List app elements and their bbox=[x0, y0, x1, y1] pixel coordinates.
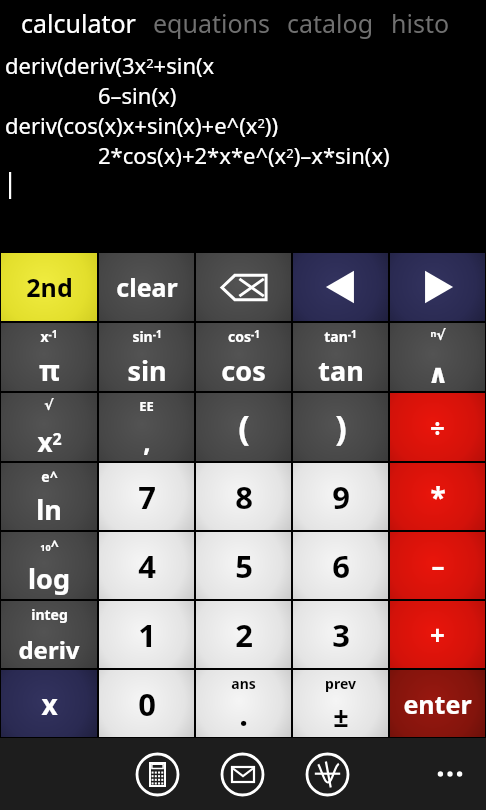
button[interactable]: 9 bbox=[293, 463, 388, 530]
staticText: ± bbox=[333, 698, 349, 735]
staticText: e^ bbox=[41, 467, 58, 486]
button[interactable]: 2nd bbox=[1, 253, 97, 321]
staticText: tan-1 bbox=[324, 327, 357, 346]
button[interactable]: Calculator bbox=[135, 752, 180, 797]
staticText: deriv(cos(x)x+sin(x)+e^(x2)) bbox=[5, 110, 279, 140]
staticText: 6–sin(x) bbox=[98, 80, 177, 110]
staticText: catalog bbox=[287, 6, 374, 40]
staticText: deriv bbox=[18, 633, 80, 666]
button[interactable]: 1 bbox=[99, 601, 194, 668]
staticText: calculator bbox=[21, 6, 136, 40]
button[interactable]: x-1 bbox=[1, 323, 97, 391]
button[interactable]: * bbox=[390, 463, 485, 530]
button[interactable]: e^ bbox=[1, 463, 97, 530]
staticText: 9 bbox=[332, 476, 350, 518]
button[interactable]: 6 bbox=[293, 532, 388, 599]
button[interactable]: integ bbox=[1, 601, 97, 668]
staticText: ) bbox=[335, 404, 347, 450]
staticText: prev bbox=[325, 674, 356, 693]
staticText: 2*cos(x)+2*x*e^(x2)–x*sin(x) bbox=[98, 140, 390, 170]
staticText: 2 bbox=[235, 614, 253, 656]
button[interactable]: enter bbox=[390, 670, 485, 737]
staticText: ∧ bbox=[427, 359, 449, 389]
button[interactable]: Move right bbox=[390, 253, 485, 321]
staticText: 3 bbox=[332, 614, 350, 656]
staticText: ans bbox=[231, 674, 256, 693]
staticText: cos-1 bbox=[228, 327, 260, 346]
button[interactable]: √ bbox=[1, 393, 97, 461]
staticText: ln bbox=[36, 491, 62, 528]
staticText: sin bbox=[127, 352, 167, 389]
staticText: log bbox=[28, 560, 70, 597]
button[interactable]: Backspace bbox=[196, 253, 291, 321]
button[interactable]: Mail bbox=[220, 752, 265, 797]
staticText: ( bbox=[238, 404, 250, 450]
staticText: clear bbox=[116, 270, 178, 304]
button[interactable]: 4 bbox=[99, 532, 194, 599]
button[interactable]: ( bbox=[196, 393, 291, 461]
staticText: π bbox=[39, 351, 60, 389]
staticText: 7 bbox=[138, 476, 156, 518]
staticText: . bbox=[239, 693, 248, 735]
button[interactable]: ans bbox=[196, 670, 291, 737]
staticText: deriv(deriv(3x2+sin(x bbox=[5, 50, 215, 80]
button[interactable]: 10^ bbox=[1, 532, 97, 599]
button[interactable]: ) bbox=[293, 393, 388, 461]
button[interactable]: Graph bbox=[305, 752, 350, 797]
staticText: x-1 bbox=[40, 327, 58, 346]
button[interactable]: Move left bbox=[293, 253, 388, 321]
button[interactable]: clear bbox=[99, 253, 194, 321]
button[interactable]: n√ bbox=[390, 323, 485, 391]
staticText: cos bbox=[221, 352, 266, 389]
button[interactable]: sin-1 bbox=[99, 323, 194, 391]
button[interactable]: cos-1 bbox=[196, 323, 291, 391]
button[interactable]: 2 bbox=[196, 601, 291, 668]
staticText: * bbox=[430, 478, 446, 516]
staticText: 6 bbox=[332, 545, 350, 587]
button[interactable]: tan-1 bbox=[293, 323, 388, 391]
button[interactable]: More options bbox=[428, 752, 472, 796]
staticText: 2nd bbox=[26, 270, 73, 304]
staticText: n√ bbox=[430, 327, 446, 344]
staticText: histo bbox=[391, 6, 450, 40]
staticText: integ bbox=[31, 605, 68, 624]
button[interactable]: 7 bbox=[99, 463, 194, 530]
button[interactable]: ÷ bbox=[390, 393, 485, 461]
staticText: , bbox=[143, 424, 151, 459]
button[interactable]: x bbox=[1, 670, 97, 737]
button[interactable]: EE bbox=[99, 393, 194, 461]
staticText: 10^ bbox=[40, 536, 59, 555]
button[interactable]: + bbox=[390, 601, 485, 668]
button[interactable]: 0 bbox=[99, 670, 194, 737]
staticText: 0 bbox=[138, 683, 156, 725]
button[interactable]: 3 bbox=[293, 601, 388, 668]
staticText: ÷ bbox=[430, 410, 445, 445]
staticText: EE bbox=[139, 397, 154, 415]
staticText: enter bbox=[403, 687, 472, 721]
button[interactable]: – bbox=[390, 532, 485, 599]
staticText: 8 bbox=[235, 476, 253, 518]
staticText: x2 bbox=[37, 424, 62, 459]
staticText: sin-1 bbox=[132, 327, 162, 346]
staticText: + bbox=[430, 617, 445, 652]
staticText: tan bbox=[318, 352, 364, 389]
button[interactable]: 5 bbox=[196, 532, 291, 599]
staticText: 5 bbox=[235, 545, 253, 587]
button[interactable]: 8 bbox=[196, 463, 291, 530]
staticText: 1 bbox=[138, 614, 156, 656]
button[interactable]: prev bbox=[293, 670, 388, 737]
staticText: x bbox=[41, 685, 58, 723]
staticText: 4 bbox=[138, 545, 156, 587]
staticText: equations bbox=[153, 6, 270, 40]
staticText: – bbox=[431, 548, 445, 583]
staticText: √ bbox=[44, 397, 54, 413]
